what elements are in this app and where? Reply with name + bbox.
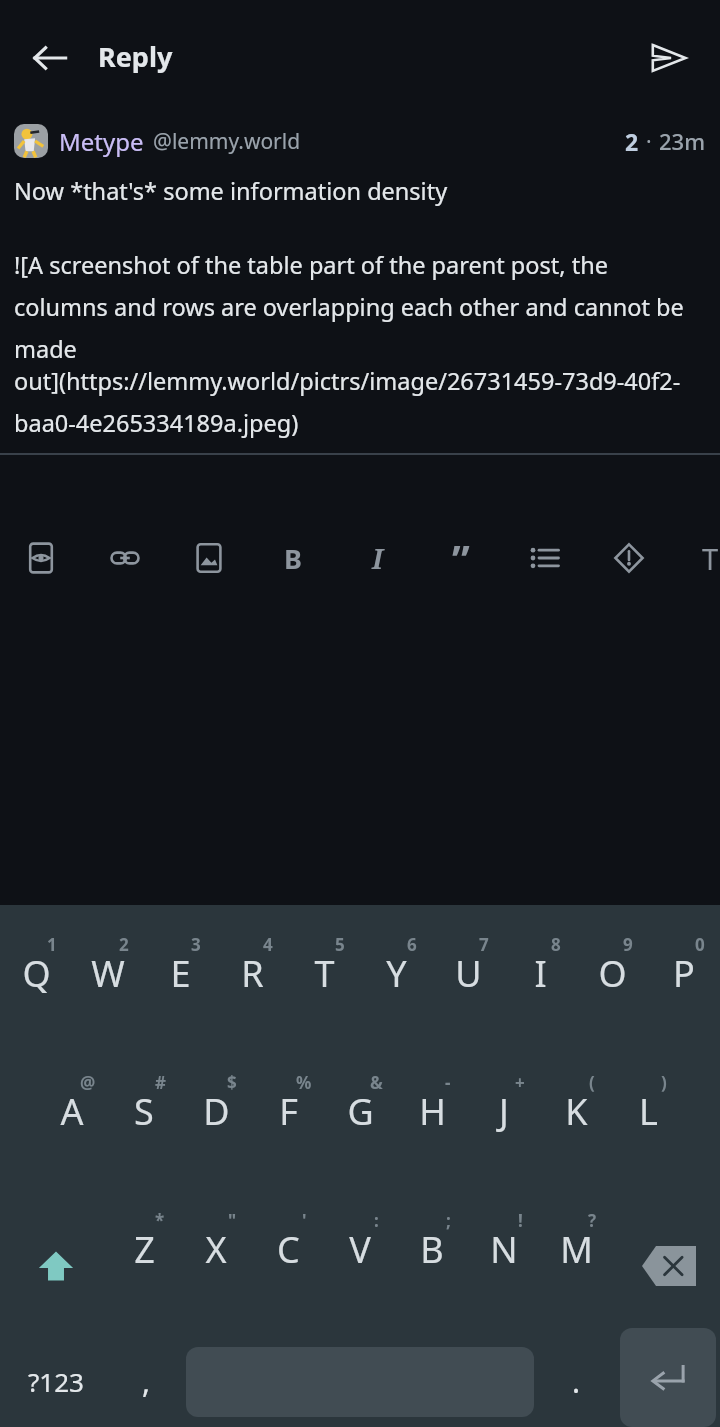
- button[interactable]: Preview: [14, 531, 68, 585]
- staticText: ![A screenshot of the table part of the …: [14, 249, 706, 365]
- staticText: :: [374, 1209, 379, 1232]
- staticText: B: [284, 540, 302, 577]
- button[interactable]: Symbols: [6, 1335, 106, 1427]
- staticText: M: [560, 1225, 593, 1274]
- button[interactable]: Back: [22, 30, 78, 86]
- staticText: L: [639, 1087, 658, 1136]
- button[interactable]: &: [324, 1059, 396, 1197]
- staticText: F: [279, 1087, 298, 1136]
- staticText: 4: [263, 933, 273, 956]
- staticText: ”: [452, 531, 470, 585]
- button[interactable]: Shift: [6, 1197, 106, 1335]
- staticText: ): [661, 1071, 667, 1094]
- staticText: C: [277, 1225, 300, 1274]
- button[interactable]: Text: [683, 531, 720, 585]
- button[interactable]: 3: [144, 921, 216, 1059]
- staticText: .: [572, 1361, 581, 1402]
- button[interactable]: ;: [396, 1197, 468, 1335]
- button[interactable]: ): [612, 1059, 684, 1197]
- staticText: U: [455, 949, 482, 998]
- staticText: Now *that's* some information density: [14, 175, 448, 207]
- staticText: (: [589, 1071, 595, 1094]
- staticText: 5: [335, 933, 345, 956]
- staticText: Metype: [59, 125, 144, 158]
- staticText: ': [302, 1209, 307, 1232]
- button[interactable]: ': [252, 1197, 324, 1335]
- button[interactable]: 0: [648, 921, 720, 1059]
- staticText: 2: [625, 126, 639, 157]
- button[interactable]: (: [540, 1059, 612, 1197]
- staticText: 1: [47, 933, 57, 956]
- button[interactable]: -: [396, 1059, 468, 1197]
- staticText: 0: [695, 933, 705, 956]
- button[interactable]: Bold: [266, 531, 320, 585]
- button[interactable]: Quote: [434, 531, 488, 585]
- staticText: &: [370, 1071, 383, 1094]
- staticText: Reply: [98, 38, 173, 75]
- button[interactable]: @: [36, 1059, 108, 1197]
- staticText: ": [228, 1209, 237, 1232]
- staticText: $: [227, 1071, 237, 1094]
- staticText: X: [205, 1225, 227, 1274]
- staticText: !: [518, 1209, 523, 1232]
- button[interactable]: Link: [98, 531, 152, 585]
- staticText: T: [702, 539, 719, 578]
- staticText: P: [673, 949, 695, 998]
- button[interactable]: ,: [110, 1335, 182, 1427]
- staticText: 7: [479, 933, 489, 956]
- staticText: A: [60, 1087, 84, 1136]
- staticText: #: [155, 1071, 166, 1094]
- staticText: W: [91, 949, 125, 998]
- staticText: %: [296, 1071, 312, 1094]
- button[interactable]: 1: [0, 921, 72, 1059]
- button[interactable]: Image: [182, 531, 236, 585]
- button[interactable]: $: [180, 1059, 252, 1197]
- staticText: ·: [646, 127, 652, 156]
- staticText: out](https://lemmy.world/pictrs/image/26…: [14, 365, 706, 439]
- button[interactable]: #: [108, 1059, 180, 1197]
- staticText: -: [445, 1071, 451, 1094]
- staticText: ?123: [28, 1364, 84, 1399]
- button[interactable]: .: [540, 1335, 612, 1427]
- staticText: D: [203, 1087, 230, 1136]
- button[interactable]: 7: [432, 921, 504, 1059]
- button[interactable]: Spoiler: [602, 531, 656, 585]
- staticText: 2: [119, 933, 129, 956]
- staticText: Z: [134, 1225, 155, 1274]
- staticText: J: [499, 1087, 509, 1136]
- staticText: I: [372, 540, 383, 577]
- staticText: H: [419, 1087, 446, 1136]
- button[interactable]: 8: [504, 921, 576, 1059]
- staticText: 8: [551, 933, 561, 956]
- staticText: G: [347, 1087, 374, 1136]
- staticText: +: [515, 1071, 525, 1094]
- button[interactable]: 2: [72, 921, 144, 1059]
- button[interactable]: +: [468, 1059, 540, 1197]
- staticText: @: [80, 1071, 96, 1094]
- button[interactable]: 4: [216, 921, 288, 1059]
- staticText: @lemmy.world: [153, 127, 301, 156]
- button[interactable]: *: [108, 1197, 180, 1335]
- staticText: Q: [22, 949, 51, 998]
- staticText: B: [420, 1225, 444, 1274]
- button[interactable]: List: [518, 531, 572, 585]
- button[interactable]: Send: [638, 28, 698, 88]
- button[interactable]: Italic: [350, 531, 404, 585]
- button[interactable]: ": [180, 1197, 252, 1335]
- staticText: V: [349, 1225, 371, 1274]
- button[interactable]: !: [468, 1197, 540, 1335]
- staticText: N: [490, 1225, 518, 1274]
- button[interactable]: 5: [288, 921, 360, 1059]
- button[interactable]: :: [324, 1197, 396, 1335]
- button[interactable]: Enter: [620, 1328, 716, 1427]
- button[interactable]: 6: [360, 921, 432, 1059]
- button[interactable]: ?: [540, 1197, 612, 1335]
- button[interactable]: Backspace: [622, 1197, 716, 1335]
- staticText: K: [565, 1087, 588, 1136]
- staticText: ,: [142, 1361, 151, 1402]
- button[interactable]: %: [252, 1059, 324, 1197]
- button[interactable]: 9: [576, 921, 648, 1059]
- staticText: O: [598, 949, 627, 998]
- staticText: 23m: [659, 126, 706, 156]
